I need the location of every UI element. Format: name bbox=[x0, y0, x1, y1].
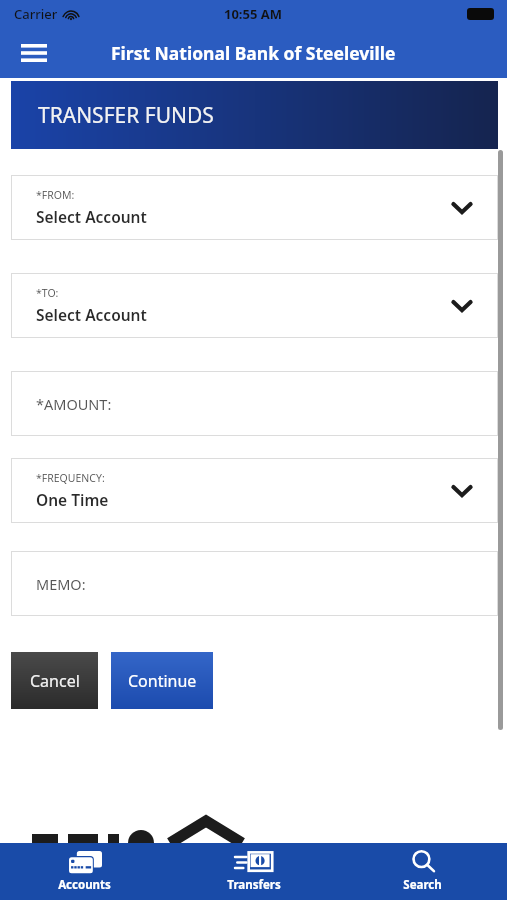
button[interactable]: *TO: bbox=[11, 273, 498, 338]
button[interactable]: MEMO: bbox=[11, 551, 498, 616]
staticText: 10:55 AM bbox=[224, 5, 283, 23]
staticText: *FROM: bbox=[36, 188, 75, 202]
button[interactable]: Cancel bbox=[11, 652, 98, 709]
button[interactable]: Accounts bbox=[0, 843, 169, 900]
staticText: One Time bbox=[36, 489, 109, 510]
staticText: Search bbox=[403, 877, 442, 893]
staticText: Cancel bbox=[30, 670, 80, 692]
staticText: Accounts bbox=[58, 877, 111, 893]
button[interactable]: Transfers bbox=[169, 843, 338, 900]
button[interactable]: Search bbox=[338, 843, 507, 900]
button[interactable]: Continue bbox=[111, 652, 213, 709]
staticText: *TO: bbox=[36, 286, 59, 300]
staticText: MEMO: bbox=[36, 574, 86, 594]
staticText: *AMOUNT: bbox=[36, 394, 112, 414]
staticText: Continue bbox=[128, 670, 197, 692]
button[interactable]: *FROM: bbox=[11, 175, 498, 240]
staticText: Select Account bbox=[36, 206, 147, 227]
staticText: Transfers bbox=[227, 877, 281, 893]
staticText: *FREQUENCY: bbox=[36, 471, 105, 485]
staticText: Carrier bbox=[14, 5, 58, 23]
button[interactable]: *AMOUNT: bbox=[11, 371, 498, 436]
staticText: First National Bank of Steeleville bbox=[111, 41, 396, 65]
button[interactable]: *FREQUENCY: bbox=[11, 458, 498, 523]
staticText: Select Account bbox=[36, 304, 147, 325]
staticText: TRANSFER FUNDS bbox=[38, 101, 214, 130]
button[interactable]: Menu bbox=[14, 33, 54, 73]
